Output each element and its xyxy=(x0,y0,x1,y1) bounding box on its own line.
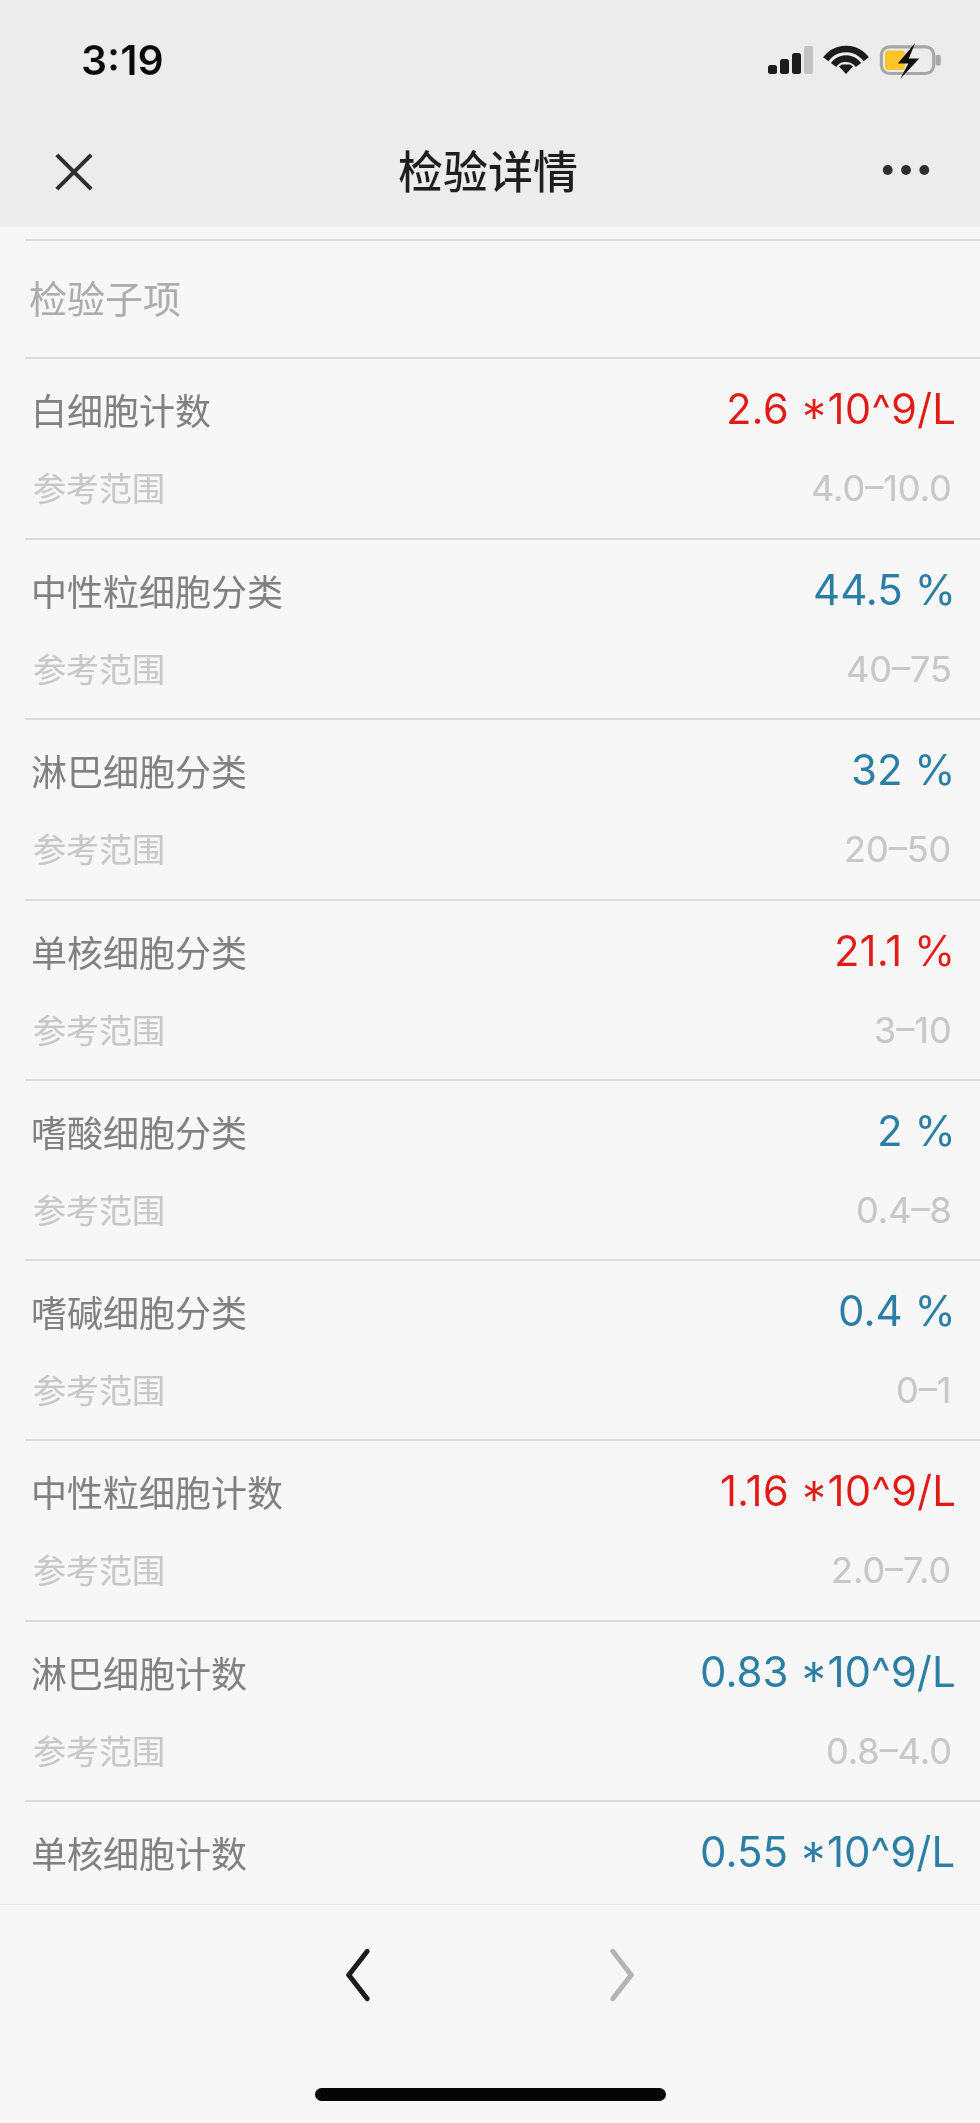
staticText: 3–10 xyxy=(874,1008,952,1052)
staticText: 0.4–8 xyxy=(856,1188,952,1232)
button[interactable]: 单核细胞分类 xyxy=(0,900,980,1080)
staticText: 32 % xyxy=(851,744,956,795)
staticText: 中性粒细胞计数 xyxy=(31,1465,284,1517)
staticText: 0.8–4.0 xyxy=(826,1729,952,1773)
button[interactable]: 中性粒细胞分类 xyxy=(0,539,980,719)
button[interactable]: More options xyxy=(866,125,956,215)
staticText: 参考范围 xyxy=(33,824,165,872)
button[interactable]: Next xyxy=(578,1931,666,2019)
staticText: 2.0–7.0 xyxy=(831,1548,952,1592)
staticText: 44.5 % xyxy=(813,564,956,615)
staticText: 单核细胞分类 xyxy=(31,925,248,977)
staticText: 参考范围 xyxy=(33,644,165,692)
staticText: 中性粒细胞分类 xyxy=(31,564,284,616)
staticText: 2.6 *10^9/L xyxy=(726,383,956,434)
staticText: 21.1 % xyxy=(834,925,956,976)
button[interactable]: 单核细胞计数 xyxy=(0,1801,980,1904)
staticText: 0.83 *10^9/L xyxy=(700,1646,956,1697)
button[interactable]: 嗜酸细胞分类 xyxy=(0,1080,980,1260)
button[interactable]: 嗜碱细胞分类 xyxy=(0,1260,980,1440)
staticText: 0.55 *10^9/L xyxy=(700,1826,956,1877)
button[interactable]: 淋巴细胞分类 xyxy=(0,719,980,899)
staticText: 0–1 xyxy=(896,1368,952,1412)
staticText: 参考范围 xyxy=(33,1365,165,1413)
staticText: 嗜酸细胞分类 xyxy=(31,1105,248,1157)
staticText: 40–75 xyxy=(846,647,952,691)
staticText: 0.4 % xyxy=(838,1285,956,1336)
staticText: 20–50 xyxy=(844,827,952,871)
staticText: 参考范围 xyxy=(33,1726,165,1774)
staticText: 1.16 *10^9/L xyxy=(720,1465,956,1516)
staticText: 参考范围 xyxy=(33,1005,165,1053)
staticText: 3:19 xyxy=(81,35,164,85)
staticText: 参考范围 xyxy=(33,463,165,511)
button[interactable]: Close xyxy=(29,125,119,215)
button[interactable]: 中性粒细胞计数 xyxy=(0,1440,980,1620)
button[interactable]: 淋巴细胞计数 xyxy=(0,1621,980,1801)
staticText: 检验详情 xyxy=(398,137,579,202)
staticText: 单核细胞计数 xyxy=(31,1826,248,1878)
staticText: 2 % xyxy=(877,1105,956,1156)
staticText: 淋巴细胞计数 xyxy=(31,1646,248,1698)
staticText: 4.0–10.0 xyxy=(811,466,952,510)
staticText: 白细胞计数 xyxy=(31,383,212,435)
button[interactable]: 白细胞计数 xyxy=(0,358,980,538)
staticText: 淋巴细胞分类 xyxy=(31,744,248,796)
staticText: 嗜碱细胞分类 xyxy=(31,1285,248,1337)
staticText: 参考范围 xyxy=(33,1545,165,1593)
button[interactable]: Previous xyxy=(314,1931,402,2019)
staticText: 参考范围 xyxy=(33,1185,165,1233)
staticText: 检验子项 xyxy=(29,269,182,324)
